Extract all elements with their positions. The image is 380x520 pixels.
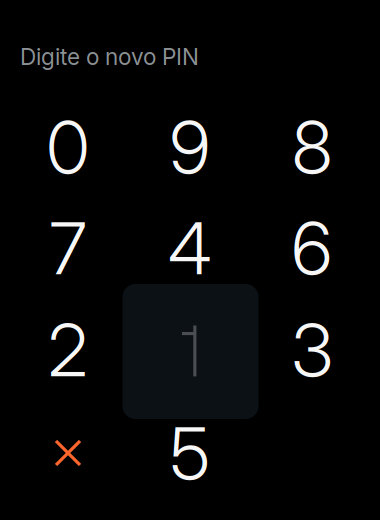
button[interactable]: 8 — [251, 96, 373, 198]
button[interactable]: 9 — [129, 96, 251, 198]
staticText: 5 — [170, 409, 210, 496]
button[interactable]: 7 — [7, 197, 129, 299]
button[interactable]: 4 — [129, 197, 251, 299]
button[interactable]: 6 — [251, 197, 373, 299]
button[interactable]: 3 — [251, 299, 373, 401]
staticText: 2 — [48, 306, 88, 393]
staticText: Digite o novo PIN — [20, 43, 199, 70]
button[interactable]: 2 — [7, 299, 129, 401]
staticText: 4 — [168, 204, 212, 291]
staticText: 6 — [291, 204, 332, 291]
button[interactable]: Apagar — [7, 402, 129, 504]
staticText: 3 — [291, 306, 332, 393]
button[interactable]: 1 — [122, 284, 258, 419]
staticText: 0 — [46, 103, 89, 190]
staticText: 7 — [49, 204, 86, 291]
staticText: 8 — [292, 103, 332, 190]
button[interactable]: 5 — [129, 402, 251, 504]
staticText: 9 — [169, 103, 210, 190]
button[interactable]: 0 — [7, 96, 129, 198]
